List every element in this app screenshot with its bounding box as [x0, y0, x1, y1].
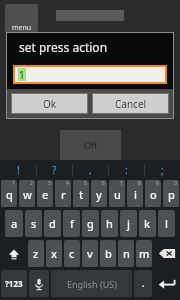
staticText: 7	[120, 180, 123, 187]
staticText: b	[105, 246, 112, 261]
button[interactable]: x	[46, 240, 62, 267]
button[interactable]: menu	[5, 4, 38, 33]
staticText: 0	[174, 180, 177, 187]
staticText: ,	[89, 163, 92, 177]
button[interactable]: 8	[127, 180, 143, 207]
button[interactable]: ?123	[1, 270, 27, 297]
button[interactable]: m	[136, 240, 152, 267]
staticText: a	[11, 216, 18, 231]
staticText: Ok	[43, 97, 57, 111]
staticText: y	[96, 187, 102, 202]
staticText: English (US)	[67, 278, 117, 290]
button[interactable]: Voice input	[29, 270, 49, 297]
staticText: d	[49, 216, 56, 231]
staticText: x	[51, 246, 57, 261]
button[interactable]: f	[63, 210, 80, 237]
button[interactable]: g	[82, 210, 99, 237]
staticText: v	[87, 246, 93, 261]
staticText: p	[168, 187, 175, 202]
button[interactable]: 4	[55, 180, 71, 207]
staticText: menu	[12, 23, 32, 33]
button[interactable]: :	[109, 160, 144, 179]
button[interactable]: Shift	[1, 240, 26, 267]
staticText: 3	[48, 180, 51, 187]
button[interactable]: 1	[15, 67, 165, 82]
staticText: 2	[30, 180, 33, 187]
button[interactable]: b	[100, 240, 116, 267]
staticText: g	[87, 216, 94, 231]
button[interactable]: z	[28, 240, 44, 267]
staticText: 6	[102, 180, 105, 187]
button[interactable]: a	[5, 210, 23, 237]
button[interactable]: Ok	[12, 94, 87, 113]
staticText: !	[17, 163, 20, 177]
button[interactable]: v	[82, 240, 98, 267]
button[interactable]: 7	[109, 180, 125, 207]
staticText: s	[31, 216, 37, 231]
button[interactable]: d	[44, 210, 61, 237]
staticText: l	[165, 216, 168, 231]
button[interactable]: 3	[37, 180, 53, 207]
staticText: ;	[161, 163, 164, 177]
staticText: i	[134, 187, 137, 202]
button[interactable]: k	[139, 210, 156, 237]
staticText: w	[23, 187, 32, 202]
staticText: Off	[84, 139, 98, 151]
staticText: set press action	[19, 39, 108, 55]
staticText: .	[142, 278, 145, 289]
button[interactable]: h	[101, 210, 118, 237]
button[interactable]: c	[64, 240, 80, 267]
button[interactable]: 6	[91, 180, 107, 207]
staticText: n	[123, 246, 130, 261]
staticText: 8	[138, 180, 141, 187]
staticText: z	[33, 246, 39, 261]
button[interactable]: n	[118, 240, 134, 267]
staticText: ?123	[5, 278, 23, 289]
button[interactable]: 2	[19, 180, 35, 207]
button[interactable]: ,	[73, 160, 108, 179]
button[interactable]: ?	[37, 160, 72, 179]
button[interactable]: j	[120, 210, 137, 237]
staticText: Cancel	[115, 97, 147, 111]
staticText: 4	[66, 180, 69, 187]
staticText: 9	[156, 180, 159, 187]
staticText: q	[6, 187, 13, 202]
button[interactable]: .	[134, 270, 152, 297]
staticText: h	[106, 216, 113, 231]
button[interactable]: 5	[73, 180, 89, 207]
staticText: m	[139, 246, 150, 261]
staticText: :	[125, 163, 128, 177]
button[interactable]: s	[25, 210, 42, 237]
staticText: f	[70, 216, 74, 231]
button[interactable]: l	[158, 210, 175, 237]
staticText: e	[42, 187, 49, 202]
button[interactable]: English (US)	[51, 270, 132, 297]
staticText: 5	[84, 180, 87, 187]
staticText: ?	[52, 163, 57, 177]
button[interactable]: 1	[1, 180, 17, 207]
staticText: u	[114, 187, 121, 202]
staticText: t	[79, 187, 84, 202]
button[interactable]: ;	[145, 160, 180, 179]
staticText: j	[127, 216, 130, 231]
button[interactable]: Backspace	[154, 240, 179, 267]
button[interactable]: Off	[60, 130, 121, 160]
staticText: c	[69, 246, 75, 261]
button[interactable]: Cancel	[93, 94, 168, 113]
button[interactable]: 9	[145, 180, 161, 207]
staticText: 1	[19, 68, 25, 81]
staticText: 1	[12, 180, 15, 187]
button[interactable]: 0	[163, 180, 179, 207]
button[interactable]: !	[0, 160, 36, 179]
staticText: r	[61, 187, 66, 202]
staticText: k	[144, 216, 151, 231]
button[interactable]: Enter	[154, 270, 179, 297]
staticText: o	[150, 187, 157, 202]
